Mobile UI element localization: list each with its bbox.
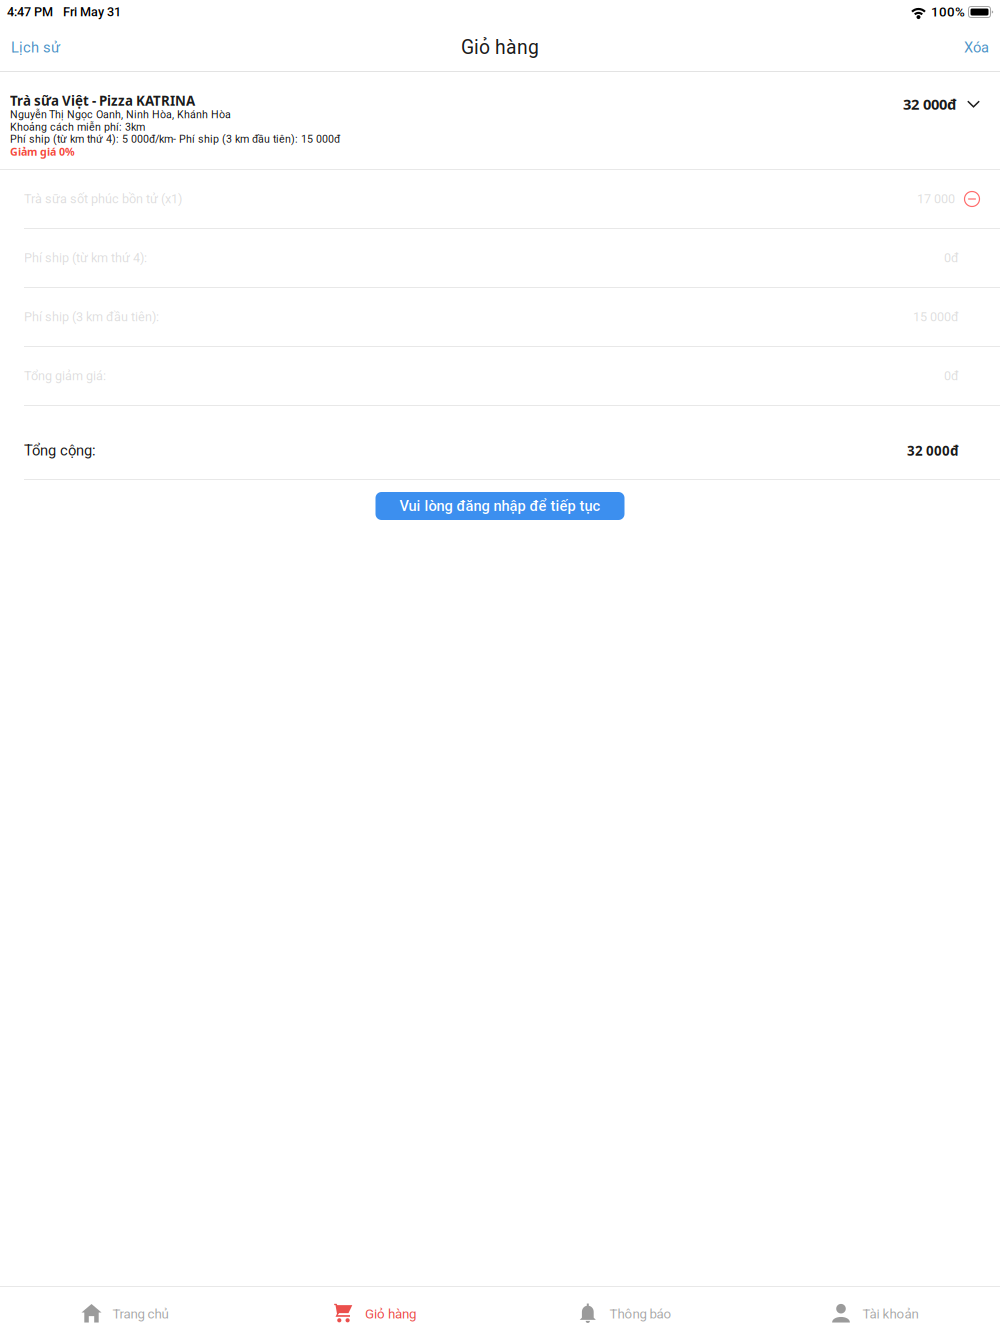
staticText: Giỏ hàng bbox=[365, 1306, 416, 1322]
staticText: Xóa bbox=[964, 39, 989, 56]
staticText: Phí ship (từ km thứ 4): 5 000đ/km- Phí s… bbox=[10, 133, 340, 145]
staticText: 15 000đ bbox=[913, 310, 959, 324]
staticText: Tổng giảm giá: bbox=[24, 369, 106, 383]
staticText: 32 000đ bbox=[903, 94, 956, 114]
staticText: Tài khoản bbox=[862, 1306, 918, 1322]
button[interactable]: Vui lòng đăng nhập để tiếp tục bbox=[375, 492, 624, 520]
staticText: Phí ship (3 km đầu tiên): bbox=[24, 310, 159, 324]
staticText: Vui lòng đăng nhập để tiếp tục bbox=[399, 497, 600, 515]
staticText: 32 000đ bbox=[907, 442, 959, 459]
staticText: Khoảng cách miễn phí: 3km bbox=[10, 121, 145, 133]
staticText: Trang chủ bbox=[112, 1306, 168, 1322]
staticText: Nguyễn Thị Ngọc Oanh, Ninh Hòa, Khánh Hò… bbox=[10, 108, 231, 121]
button[interactable]: 32 000đ bbox=[903, 93, 1000, 115]
staticText: Trà sữa Việt - Pizza KATRINA bbox=[10, 92, 195, 109]
staticText: Lịch sử bbox=[11, 39, 60, 56]
staticText: 100% bbox=[931, 4, 965, 20]
staticText: 4:47 PM bbox=[7, 5, 53, 19]
staticText: Thông báo bbox=[609, 1306, 671, 1322]
button[interactable]: Tài khoản bbox=[750, 1286, 1000, 1334]
staticText: 17 000 bbox=[917, 192, 955, 206]
button[interactable]: Thông báo bbox=[500, 1286, 750, 1334]
button[interactable]: Trang chủ bbox=[0, 1286, 250, 1334]
staticText: Giỏ hàng bbox=[461, 36, 539, 59]
staticText: Trà sữa sốt phúc bồn tử (x1) bbox=[24, 192, 182, 206]
staticText: 0đ bbox=[944, 369, 959, 383]
staticText: Phí ship (từ km thứ 4): bbox=[24, 251, 147, 265]
button[interactable]: Xóa bbox=[953, 32, 1000, 63]
button[interactable]: Giỏ hàng bbox=[250, 1286, 500, 1334]
staticText: Tổng cộng: bbox=[24, 442, 96, 459]
staticText: Giảm giá 0% bbox=[10, 144, 75, 159]
staticText: Fri May 31 bbox=[63, 5, 121, 19]
button[interactable]: Lịch sử bbox=[0, 32, 71, 63]
staticText: 0đ bbox=[944, 251, 959, 265]
